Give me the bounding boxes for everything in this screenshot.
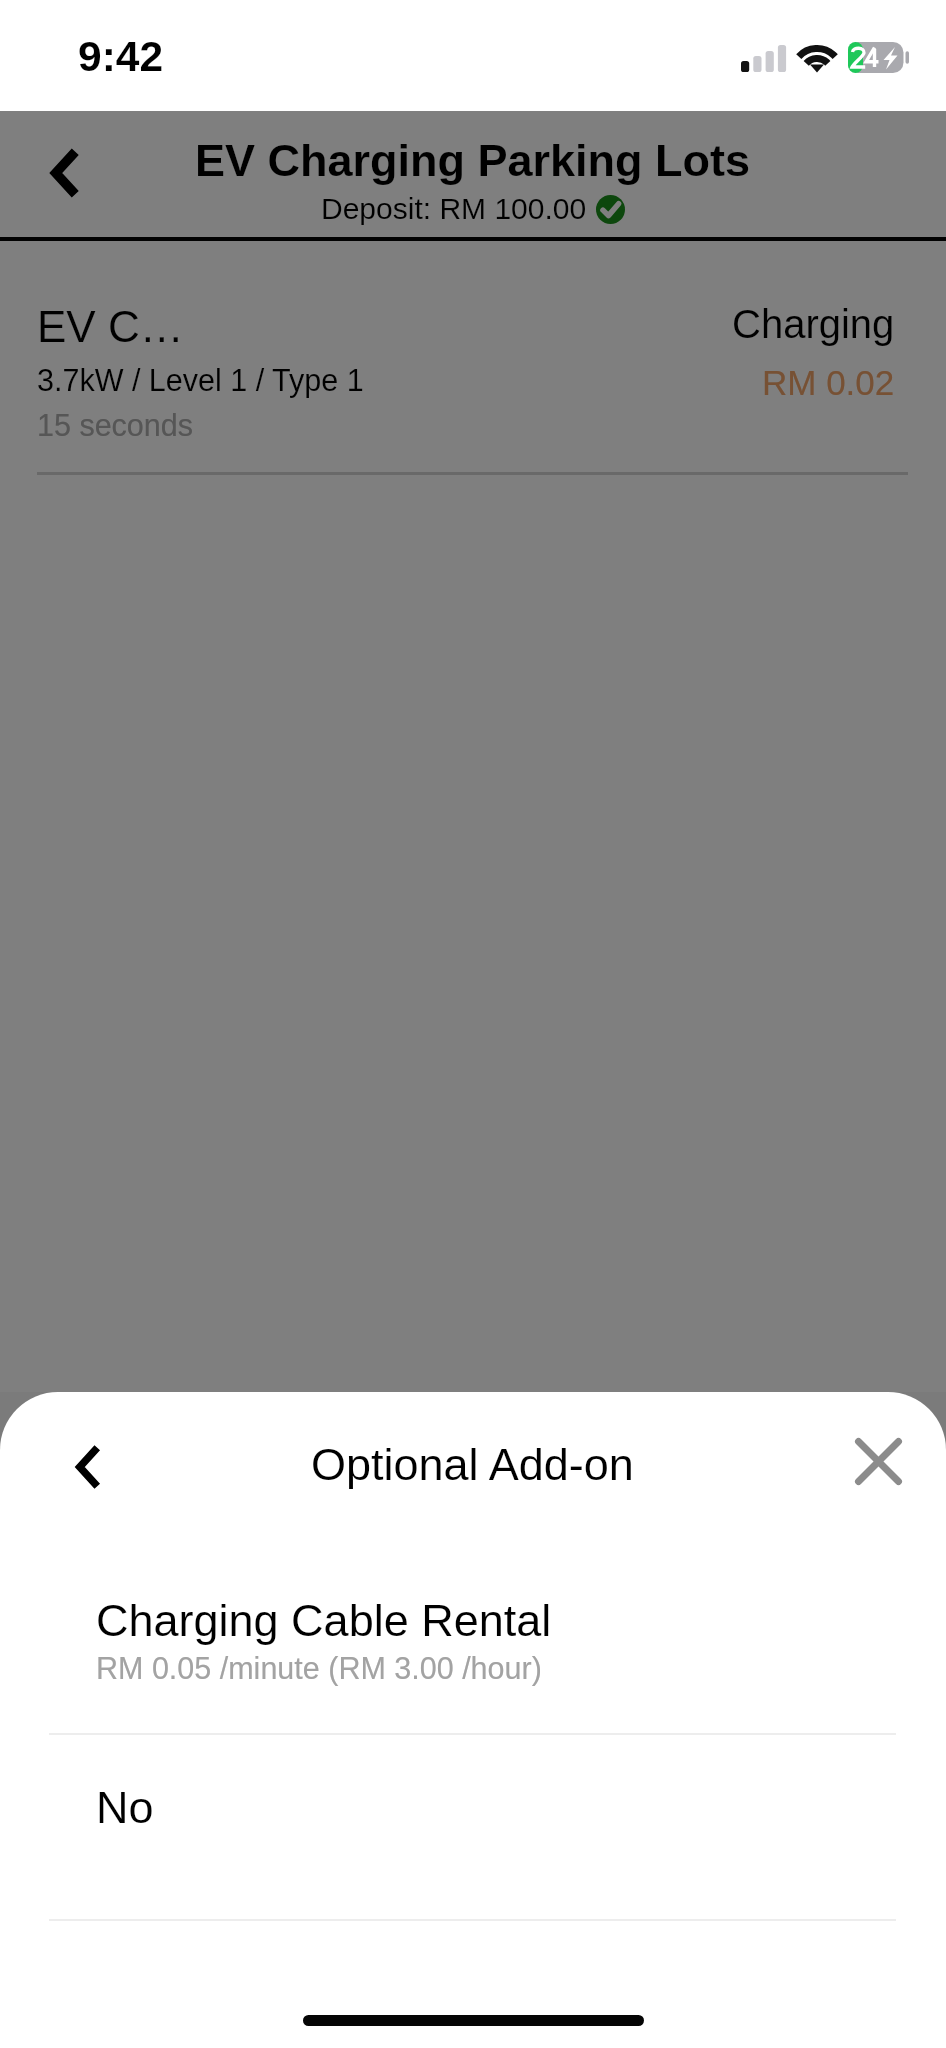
staticText: RM 0.05 /minute (RM 3.00 /hour) (96, 1651, 542, 1685)
staticText: No (96, 1782, 154, 1832)
staticText: Deposit: RM 100.00 (321, 192, 587, 226)
button[interactable]: Back (24, 132, 106, 214)
staticText: RM 0.02 (762, 363, 895, 402)
staticText: Charging (732, 302, 895, 347)
staticText: 9:42 (78, 33, 164, 80)
button[interactable]: EV C… (0, 241, 946, 476)
button[interactable]: Charging Cable Rental (0, 1581, 946, 1733)
staticText: EV Charging Parking Lots (195, 135, 751, 185)
button[interactable]: Back (47, 1426, 129, 1508)
staticText: Optional Add-on (311, 1439, 634, 1489)
staticText: 15 seconds (37, 408, 193, 442)
staticText: 3.7kW / Level 1 / Type 1 (37, 363, 364, 397)
staticText: Charging Cable Rental (96, 1595, 552, 1645)
button[interactable]: No (0, 1735, 946, 1919)
staticText: EV C… (37, 302, 184, 351)
button[interactable]: Close (837, 1420, 919, 1502)
